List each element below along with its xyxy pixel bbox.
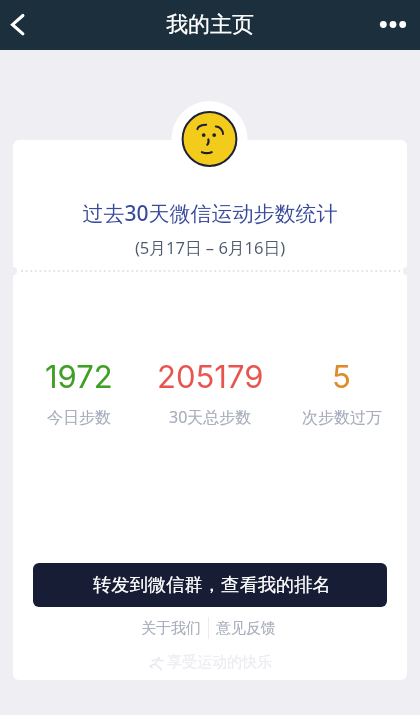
- staticText: 享受运动的快乐: [167, 653, 272, 672]
- staticText: 205179: [157, 358, 264, 396]
- staticText: 5: [332, 358, 351, 396]
- staticText: 我的主页: [166, 11, 254, 39]
- staticText: 1972: [45, 358, 113, 396]
- button[interactable]: Back: [0, 3, 39, 47]
- staticText: 意见反馈: [216, 619, 276, 638]
- staticText: 关于我们: [141, 619, 201, 638]
- button[interactable]: More options: [371, 3, 415, 47]
- button[interactable]: 转发到微信群，查看我的排名: [33, 563, 387, 607]
- button[interactable]: 关于我们: [134, 613, 208, 643]
- staticText: 转发到微信群，查看我的排名: [93, 573, 331, 596]
- staticText: 次步数过万: [302, 408, 382, 428]
- staticText: 30天总步数: [169, 406, 252, 428]
- staticText: 今日步数: [47, 408, 111, 428]
- staticText: 过去30天微信运动步数统计: [13, 199, 407, 228]
- button[interactable]: 意见反馈: [209, 613, 283, 643]
- staticText: (5月17日 – 6月16日): [13, 236, 407, 259]
